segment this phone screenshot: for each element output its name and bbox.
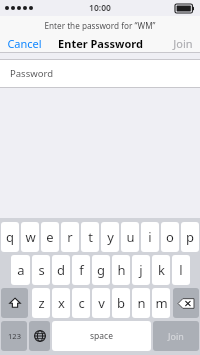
button[interactable]: x <box>52 288 70 318</box>
button[interactable]: Backspace <box>173 288 199 318</box>
staticText: u <box>126 228 135 246</box>
staticText: m <box>155 294 168 312</box>
staticText: l <box>179 261 183 279</box>
staticText: Join <box>168 330 184 342</box>
button[interactable]: j <box>132 255 150 285</box>
button[interactable]: a <box>11 255 30 285</box>
button[interactable]: k <box>152 255 170 285</box>
staticText: j <box>139 261 143 279</box>
staticText: x <box>58 294 65 312</box>
button[interactable]: g <box>92 255 110 285</box>
staticText: a <box>17 261 25 279</box>
button[interactable]: o <box>161 222 179 252</box>
button[interactable]: i <box>141 222 159 252</box>
staticText: q <box>6 228 14 246</box>
button[interactable]: 123 <box>1 321 27 351</box>
staticText: p <box>186 228 194 246</box>
button[interactable]: y <box>101 222 119 252</box>
button[interactable]: b <box>112 288 130 318</box>
button[interactable]: Switch keyboard language <box>29 321 50 351</box>
button[interactable]: space <box>52 321 151 351</box>
button[interactable]: q <box>1 222 19 252</box>
staticText: v <box>98 294 105 312</box>
button[interactable]: h <box>112 255 130 285</box>
staticText: y <box>107 228 114 246</box>
staticText: z <box>38 294 45 312</box>
staticText: 10:00 <box>89 2 111 14</box>
staticText: n <box>137 294 146 312</box>
staticText: f <box>79 261 84 279</box>
button[interactable]: p <box>181 222 199 252</box>
staticText: space <box>90 330 113 342</box>
staticText: w <box>25 228 36 246</box>
staticText: k <box>158 261 165 279</box>
button[interactable]: Join <box>153 321 199 351</box>
button[interactable]: Cancel <box>0 34 49 52</box>
staticText: Enter Password <box>58 36 143 51</box>
staticText: r <box>67 228 73 246</box>
staticText: t <box>88 228 93 246</box>
button[interactable]: d <box>52 255 70 285</box>
button[interactable]: Join <box>166 34 200 52</box>
staticText: e <box>46 228 54 246</box>
staticText: Enter the password for “WM” <box>44 20 156 31</box>
button[interactable]: s <box>32 255 50 285</box>
button[interactable]: e <box>41 222 59 252</box>
staticText: d <box>57 261 65 279</box>
button[interactable]: w <box>21 222 39 252</box>
staticText: Password <box>10 67 53 80</box>
button[interactable]: c <box>72 288 90 318</box>
staticText: i <box>148 228 152 246</box>
staticText: 123 <box>8 331 21 341</box>
button[interactable]: u <box>121 222 139 252</box>
button[interactable]: m <box>152 288 170 318</box>
staticText: g <box>97 261 105 279</box>
staticText: h <box>117 261 126 279</box>
staticText: o <box>166 228 174 246</box>
staticText: b <box>117 294 125 312</box>
staticText: Cancel <box>7 36 42 51</box>
staticText: s <box>38 261 45 279</box>
button[interactable]: t <box>81 222 99 252</box>
button[interactable]: n <box>132 288 150 318</box>
button[interactable]: z <box>32 288 50 318</box>
button[interactable]: f <box>72 255 90 285</box>
button[interactable]: r <box>61 222 79 252</box>
staticText: c <box>78 294 85 312</box>
button[interactable]: v <box>92 288 110 318</box>
button[interactable]: Password <box>0 60 200 87</box>
staticText: Join <box>173 36 193 51</box>
button[interactable]: Shift <box>1 288 28 318</box>
button[interactable]: l <box>172 255 190 285</box>
